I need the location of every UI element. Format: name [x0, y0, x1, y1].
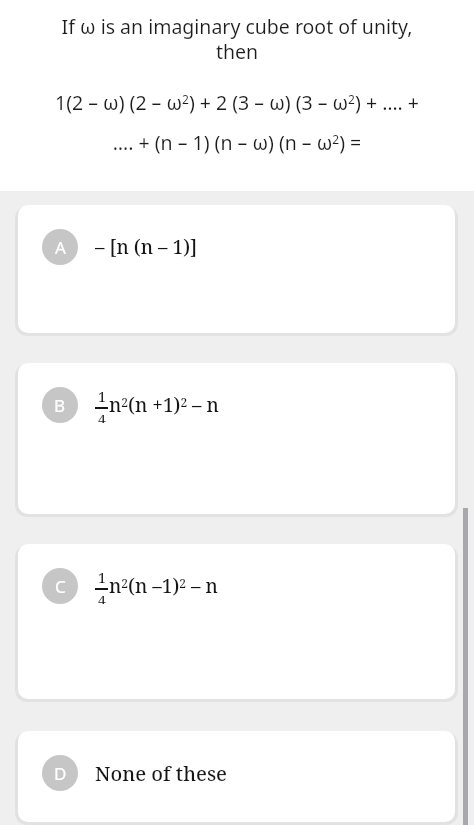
- staticText: 1: [98, 568, 106, 587]
- button[interactable]: B: [18, 363, 455, 514]
- staticText: None of these: [95, 760, 227, 787]
- staticText: If ω is an imaginary cube root of unity,…: [20, 13, 454, 65]
- button[interactable]: D: [18, 731, 455, 822]
- staticText: n2(n +1)2 – n: [109, 392, 219, 418]
- button[interactable]: A: [18, 205, 455, 333]
- button[interactable]: C: [18, 544, 455, 699]
- staticText: 4: [98, 410, 106, 423]
- staticText: D: [54, 762, 67, 785]
- staticText: 1: [98, 387, 106, 406]
- staticText: A: [55, 236, 66, 259]
- staticText: n2(n –1)2 – n: [109, 573, 218, 599]
- staticText: B: [54, 394, 66, 417]
- staticText: 1(2 – ω) (2 – ω2) + 2 (3 – ω) (3 – ω2) +…: [20, 89, 454, 155]
- staticText: – [n (n – 1)]: [95, 234, 198, 260]
- staticText: C: [55, 575, 66, 598]
- staticText: 4: [98, 591, 106, 604]
